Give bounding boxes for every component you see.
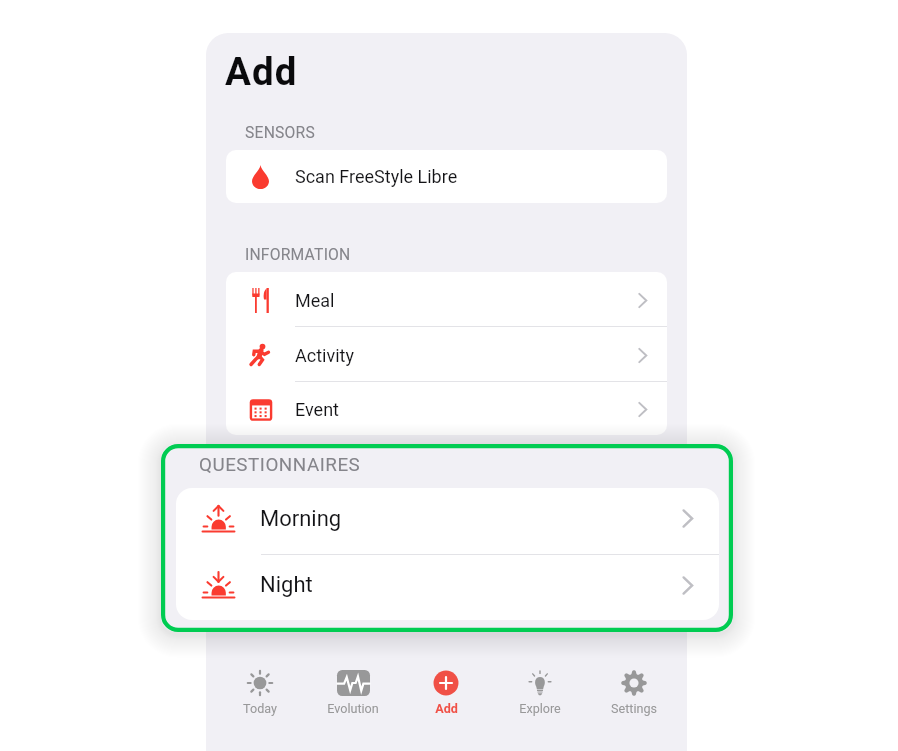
staticText: QUESTIONNAIRES — [199, 454, 361, 476]
staticText: Meal — [295, 290, 335, 311]
staticText: SENSORS — [245, 123, 315, 141]
staticText: Today — [243, 701, 277, 716]
staticText: Scan FreeStyle Libre — [295, 166, 458, 187]
staticText: Settings — [611, 701, 657, 716]
button[interactable]: Explore — [493, 639, 587, 716]
button[interactable]: Activity — [226, 327, 667, 381]
button[interactable]: Today — [213, 639, 306, 716]
button[interactable]: Evolution — [306, 639, 399, 716]
staticText: INFORMATION — [245, 245, 351, 263]
button[interactable]: Meal — [226, 272, 667, 326]
button[interactable]: Settings — [587, 639, 681, 716]
button[interactable]: Morning — [176, 488, 719, 554]
staticText: Add — [225, 49, 298, 94]
staticText: Morning — [260, 506, 342, 532]
button[interactable]: Add — [399, 639, 493, 716]
staticText: Night — [260, 572, 313, 598]
staticText: Add — [435, 701, 458, 716]
staticText: Evolution — [327, 701, 379, 716]
staticText: Event — [295, 399, 339, 420]
staticText: Explore — [519, 701, 561, 716]
button[interactable]: Event — [226, 382, 667, 435]
button[interactable]: Scan FreeStyle Libre — [226, 150, 667, 203]
button[interactable]: Night — [176, 555, 719, 620]
staticText: Activity — [295, 345, 354, 366]
